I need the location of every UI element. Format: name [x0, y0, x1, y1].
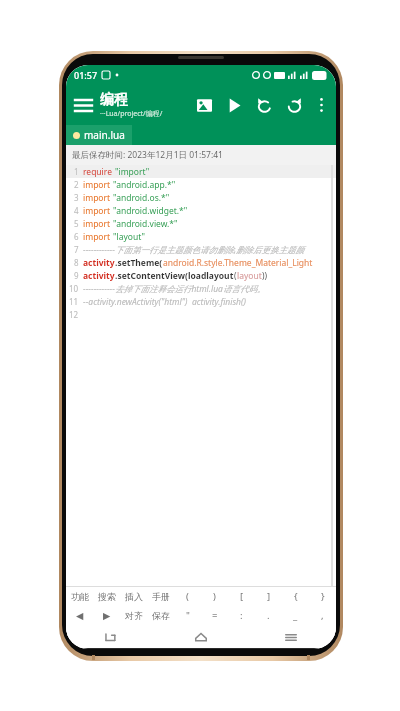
staticText: --activity.newActivity("html") activity.… [83, 296, 246, 308]
button[interactable]: main.lua [66, 125, 132, 145]
button[interactable]: " [174, 606, 201, 625]
staticText: = [212, 609, 218, 622]
button[interactable]: [ [228, 587, 255, 606]
staticText: .setContentView( [115, 270, 188, 282]
staticText: . [267, 609, 270, 622]
staticText: import [83, 192, 113, 204]
button[interactable]: ( [174, 587, 201, 606]
staticText: ] [267, 590, 271, 603]
staticText: ◀ [76, 610, 84, 621]
staticText: ------------去掉下面注释会运行html.lua语言代码。 [83, 283, 266, 295]
staticText: 10 [69, 283, 79, 294]
staticText: 8 [74, 257, 79, 268]
button[interactable]: Recents [246, 625, 336, 649]
staticText: loadlayout [188, 270, 234, 282]
button[interactable]: . [255, 606, 282, 625]
button[interactable]: Redo [279, 88, 309, 122]
button[interactable]: Home [156, 625, 246, 649]
button[interactable]: { [282, 587, 309, 606]
staticText: 7 [74, 244, 79, 255]
staticText: "android.app.*" [113, 179, 176, 191]
staticText: , [321, 609, 324, 622]
staticText: import [83, 218, 113, 230]
staticText: android.R.style.Theme_Material_Light [163, 257, 313, 269]
staticText: ( [234, 270, 237, 282]
staticText: 3 [74, 192, 79, 203]
staticText: require [83, 166, 115, 178]
staticText: 1 [74, 166, 79, 177]
staticText: "android.view.*" [113, 218, 178, 230]
button[interactable]: 对齐 [120, 606, 147, 625]
button[interactable]: 手册 [147, 587, 174, 606]
staticText: ···Lua/project/编程/ [100, 109, 163, 119]
staticText: "android.widget.*" [113, 205, 188, 217]
staticText: 11 [69, 296, 79, 307]
staticText: .setTheme( [115, 257, 163, 269]
button[interactable]: 插入 [120, 587, 147, 606]
staticText: layout [237, 270, 262, 282]
staticText: 搜索 [98, 591, 116, 602]
staticText: ( [186, 590, 189, 603]
button[interactable]: : [228, 606, 255, 625]
staticText: [ [240, 590, 244, 603]
button[interactable]: ] [255, 587, 282, 606]
button[interactable]: ▶ [93, 606, 120, 625]
button[interactable]: , [309, 606, 336, 625]
button[interactable]: ) [201, 587, 228, 606]
button[interactable]: 功能 [66, 587, 93, 606]
staticText: import [83, 179, 113, 191]
staticText: ▶ [103, 610, 111, 621]
staticText: 5 [74, 218, 79, 229]
staticText: 4 [74, 205, 79, 216]
staticText: 12 [69, 309, 79, 320]
button[interactable]: } [309, 587, 336, 606]
staticText: 6 [74, 231, 79, 242]
staticText: 2 [74, 179, 79, 190]
button[interactable]: 搜索 [93, 587, 120, 606]
staticText: 保存 [152, 610, 170, 621]
button[interactable]: = [201, 606, 228, 625]
staticText: } [321, 590, 325, 603]
staticText: : [240, 609, 243, 622]
button[interactable]: Back [66, 625, 156, 649]
staticText: 9 [74, 270, 79, 281]
staticText: 手册 [152, 591, 170, 602]
button[interactable]: ◀ [66, 606, 93, 625]
staticText: " [186, 609, 190, 622]
staticText: 最后保存时间: 2023年12月1日 01:57:41 [72, 149, 223, 161]
staticText: "layout" [113, 231, 145, 243]
staticText: import [83, 205, 113, 217]
staticText: 对齐 [125, 610, 143, 621]
staticText: { [294, 590, 298, 603]
staticText: 编程 [100, 91, 128, 109]
button[interactable]: Undo [249, 88, 279, 122]
staticText: activity [83, 257, 115, 269]
button[interactable]: 保存 [147, 606, 174, 625]
staticText: 插入 [125, 591, 143, 602]
staticText: main.lua [84, 128, 125, 142]
staticText: 01:57 [74, 69, 98, 81]
button[interactable]: Insert image [189, 88, 219, 122]
staticText: "import" [115, 166, 150, 178]
staticText: )) [262, 270, 268, 282]
button[interactable]: _ [282, 606, 309, 625]
staticText: ) [213, 590, 216, 603]
staticText: 功能 [71, 591, 89, 602]
button[interactable]: Menu [66, 88, 100, 122]
staticText: _ [293, 609, 298, 622]
staticText: activity [83, 270, 115, 282]
button[interactable]: More options [309, 88, 333, 122]
staticText: ------------下面第一行是主题颜色请勿删除,删除后更换主题颜 [83, 244, 305, 256]
staticText: "android.os.*" [113, 192, 170, 204]
button[interactable]: Run [219, 88, 249, 122]
staticText: import [83, 231, 113, 243]
